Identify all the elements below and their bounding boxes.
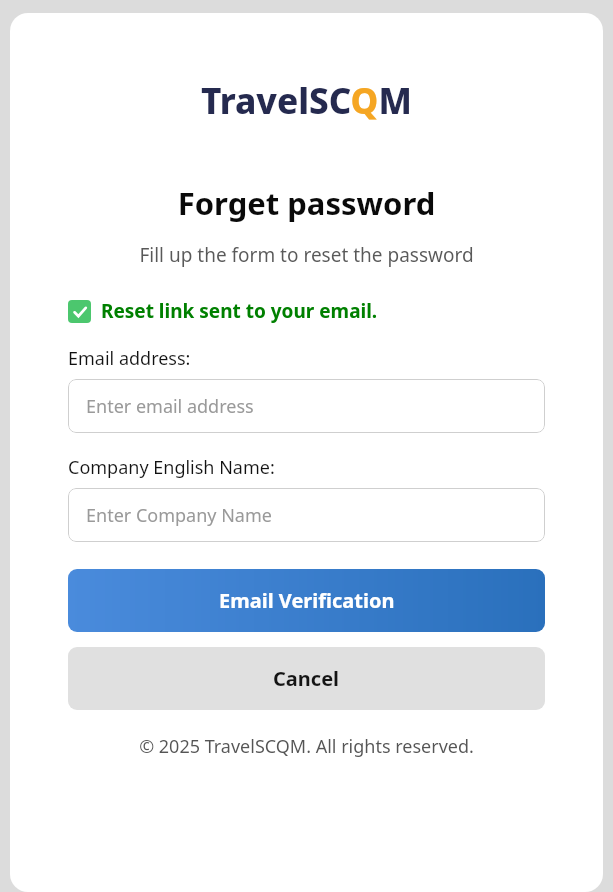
- staticText: Fill up the form to reset the password: [10, 242, 603, 268]
- button[interactable]: Email Verification: [68, 569, 545, 632]
- staticText: Company English Name:: [68, 455, 275, 480]
- staticText: © 2025 TravelSCQM. All rights reserved.: [10, 734, 603, 759]
- button[interactable]: Enter Company Name: [68, 488, 545, 542]
- button[interactable]: TravelSCQM: [197, 75, 416, 127]
- staticText: TravelSCQM: [201, 77, 412, 125]
- button[interactable]: Cancel: [68, 647, 545, 710]
- staticText: Cancel: [273, 665, 340, 692]
- staticText: Email Verification: [219, 587, 395, 614]
- other: Success: [68, 300, 91, 323]
- staticText: Forget password: [10, 182, 603, 224]
- staticText: Enter Company Name: [86, 503, 272, 528]
- staticText: Reset link sent to your email.: [101, 298, 378, 324]
- button[interactable]: Enter email address: [68, 379, 545, 433]
- staticText: Enter email address: [86, 394, 254, 419]
- staticText: Email address:: [68, 346, 191, 371]
